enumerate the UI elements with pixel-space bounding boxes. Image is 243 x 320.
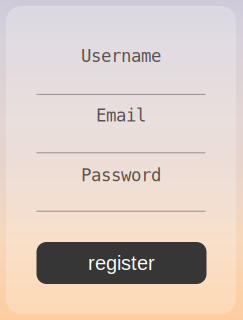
button[interactable]: register xyxy=(36,242,206,284)
staticText: Email xyxy=(96,106,146,125)
button[interactable]: Password xyxy=(36,155,205,212)
staticText: register xyxy=(88,252,155,274)
button[interactable]: Email xyxy=(36,96,205,153)
staticText: Password xyxy=(81,165,161,185)
button[interactable]: Username xyxy=(36,36,205,95)
staticText: Username xyxy=(81,46,161,66)
